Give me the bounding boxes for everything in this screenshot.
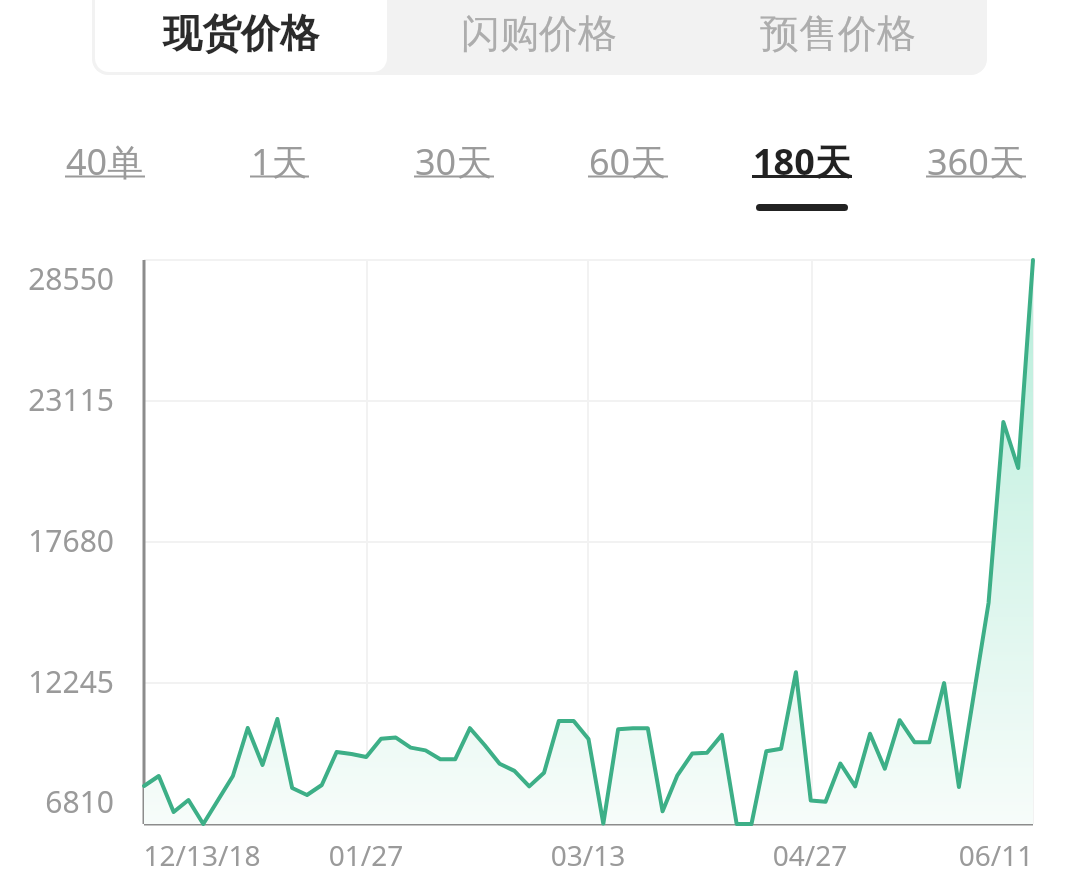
button[interactable]: 40单: [17, 137, 192, 217]
staticText: 04/27: [720, 836, 900, 874]
staticText: 23115: [0, 379, 114, 420]
staticText: 06/11: [906, 836, 1080, 874]
button[interactable]: 现货价格: [95, 0, 387, 72]
button[interactable]: 1天: [192, 137, 367, 217]
staticText: 现货价格: [163, 9, 319, 58]
staticText: 60天: [589, 137, 667, 186]
staticText: 闪购价格: [461, 9, 617, 58]
staticText: 6810: [0, 781, 114, 822]
staticText: 30天: [415, 137, 493, 186]
staticText: 12/13/18: [112, 836, 292, 874]
button[interactable]: 30天: [367, 137, 541, 217]
button[interactable]: 闪购价格: [390, 0, 688, 75]
staticText: 1天: [251, 137, 308, 186]
button[interactable]: 预售价格: [688, 0, 987, 75]
staticText: 01/27: [276, 836, 456, 874]
staticText: 40单: [66, 137, 144, 186]
staticText: 03/13: [498, 836, 678, 874]
button[interactable]: 360天: [889, 137, 1063, 217]
staticText: 12245: [0, 661, 114, 702]
staticText: 17680: [0, 520, 114, 561]
staticText: 预售价格: [760, 9, 916, 58]
staticText: 360天: [927, 137, 1025, 186]
button[interactable]: 60天: [541, 137, 715, 217]
button[interactable]: 180天: [715, 137, 889, 217]
staticText: 180天: [753, 137, 851, 186]
staticText: 28550: [0, 258, 114, 299]
